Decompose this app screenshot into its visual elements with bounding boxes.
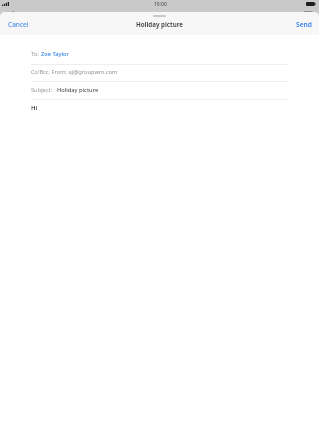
button[interactable]: Subject: <box>0 82 319 98</box>
staticText: Subject: <box>31 86 53 94</box>
staticText: To: <box>31 50 41 58</box>
button[interactable]: Cancel <box>0 17 37 32</box>
button[interactable]: To: <box>0 44 319 64</box>
staticText: Cancel <box>8 20 29 29</box>
other: Signal strength <box>2 2 9 6</box>
button[interactable]: Cc/Bcc, From: aj@groupwm.com <box>0 63 319 80</box>
other: Battery <box>306 2 316 6</box>
staticText: Zoe Taylor <box>41 50 69 58</box>
staticText: 10:00 <box>154 1 167 8</box>
button[interactable]: Send <box>289 17 319 32</box>
staticText: Holiday picture <box>136 20 184 28</box>
staticText: Cc/Bcc, From: aj@groupwm.com <box>31 68 118 76</box>
staticText: Send <box>296 20 312 29</box>
staticText: Hi <box>31 104 38 112</box>
staticText: Holiday picture <box>57 86 99 94</box>
